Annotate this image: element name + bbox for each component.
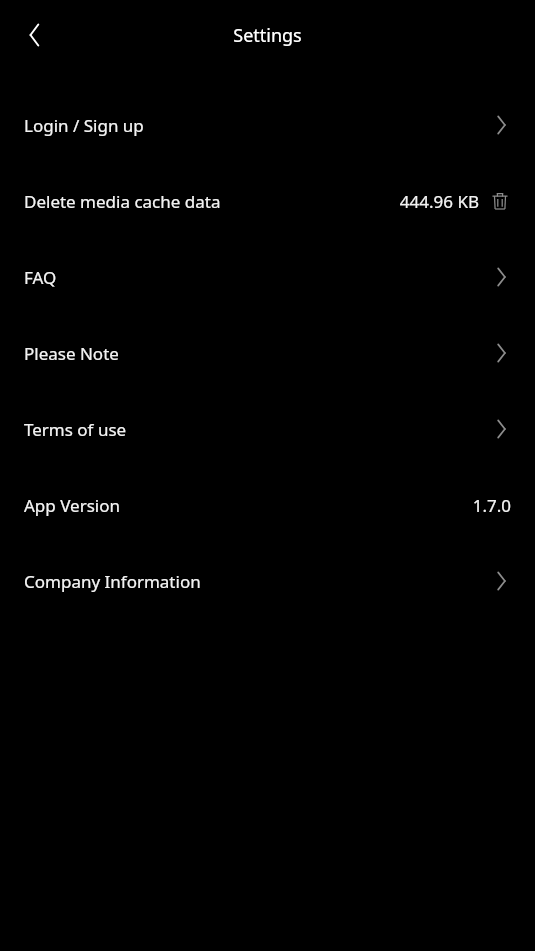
staticText: Please Note [24, 342, 119, 365]
button[interactable]: Login / Sign up [0, 87, 535, 163]
button[interactable]: Please Note [0, 315, 535, 391]
staticText: Settings [233, 23, 302, 48]
staticText: 444.96 KB [399, 190, 479, 213]
button[interactable]: FAQ [0, 239, 535, 315]
staticText: Login / Sign up [24, 114, 144, 137]
staticText: Delete media cache data [24, 190, 221, 213]
button[interactable]: Company Information [0, 543, 535, 619]
button[interactable]: Back [18, 18, 52, 52]
staticText: App Version [24, 494, 120, 517]
button[interactable]: Delete media cache data [0, 163, 535, 239]
staticText: Terms of use [24, 418, 127, 441]
button[interactable]: Terms of use [0, 391, 535, 467]
staticText: 1.7.0 [472, 494, 511, 517]
button[interactable]: App Version [0, 467, 535, 543]
staticText: FAQ [24, 266, 57, 289]
staticText: Company Information [24, 570, 201, 593]
